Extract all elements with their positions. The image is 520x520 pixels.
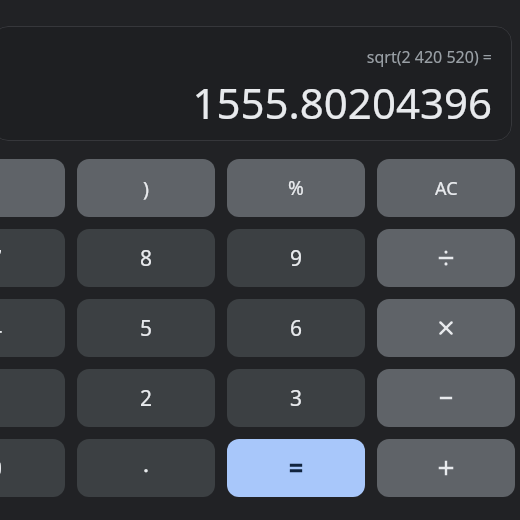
button[interactable]: Open parenthesis: [0, 159, 65, 217]
button[interactable]: Nine: [227, 229, 365, 287]
staticText: %: [288, 175, 304, 201]
staticText: 8: [140, 244, 153, 273]
staticText: 3: [290, 384, 303, 413]
button[interactable]: Add: [377, 439, 515, 497]
button[interactable]: Close parenthesis: [77, 159, 215, 217]
button[interactable]: Decimal point: [77, 439, 215, 497]
button[interactable]: Multiply: [377, 299, 515, 357]
staticText: 0: [0, 454, 3, 483]
button[interactable]: Three: [227, 369, 365, 427]
button[interactable]: Five: [77, 299, 215, 357]
button[interactable]: Divide: [377, 229, 515, 287]
staticText: AC: [435, 176, 458, 201]
staticText: 5: [140, 314, 153, 343]
staticText: sqrt(2 420 520) =: [0, 46, 492, 70]
button[interactable]: All clear: [377, 159, 515, 217]
staticText: 7: [0, 244, 3, 273]
button[interactable]: Eight: [77, 229, 215, 287]
staticText: 4: [0, 314, 3, 343]
button[interactable]: Equals: [227, 439, 365, 497]
staticText: 1555.80204396: [0, 74, 492, 130]
button[interactable]: Zero: [0, 439, 65, 497]
staticText: ): [143, 175, 149, 202]
staticText: 6: [290, 314, 303, 343]
button[interactable]: Four: [0, 299, 65, 357]
staticText: 9: [290, 244, 303, 273]
button[interactable]: Seven: [0, 229, 65, 287]
button[interactable]: Percent: [227, 159, 365, 217]
button[interactable]: One: [0, 369, 65, 427]
button[interactable]: Subtract: [377, 369, 515, 427]
button[interactable]: Two: [77, 369, 215, 427]
staticText: 2: [140, 384, 153, 413]
button[interactable]: Six: [227, 299, 365, 357]
